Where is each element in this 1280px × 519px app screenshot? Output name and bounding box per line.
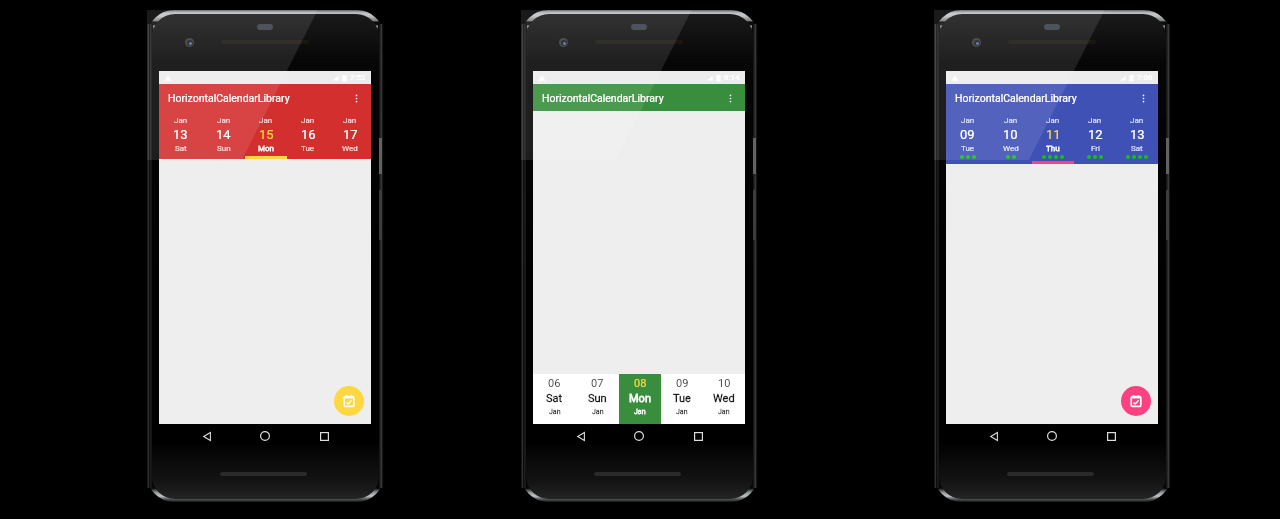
button[interactable]: Recents	[687, 425, 709, 447]
button[interactable]: Recents	[1100, 425, 1122, 447]
staticText: Jan	[961, 116, 975, 125]
button[interactable]: 10	[703, 374, 745, 424]
staticText: 06	[548, 377, 561, 390]
staticText: Thu	[1046, 144, 1060, 153]
staticText: Sat	[546, 392, 563, 405]
button[interactable]: Home	[254, 425, 276, 447]
button[interactable]: Jan	[1116, 111, 1158, 164]
staticText: 7:06	[1137, 73, 1153, 82]
button[interactable]: Home	[628, 425, 650, 447]
button[interactable]: Back	[570, 425, 592, 447]
staticText: Jan	[174, 116, 188, 125]
staticText: Tue	[301, 144, 315, 153]
staticText: Sat	[175, 144, 187, 153]
staticText: HorizontalCalendarLibrary	[542, 92, 664, 104]
staticText: 09	[676, 377, 689, 390]
staticText: Jan	[259, 116, 273, 125]
staticText: 14	[216, 127, 231, 142]
staticText: 8:14	[724, 73, 740, 82]
button[interactable]: Back	[196, 425, 218, 447]
staticText: HorizontalCalendarLibrary	[168, 92, 290, 104]
button[interactable]: 06	[533, 374, 576, 424]
staticText: Jan	[301, 116, 315, 125]
staticText: Jan	[634, 408, 646, 416]
staticText: 7:52	[350, 73, 366, 82]
staticText: Wed	[342, 144, 358, 153]
button[interactable]: Jan	[989, 111, 1032, 164]
staticText: Jan	[549, 408, 561, 416]
staticText: Jan	[1046, 116, 1060, 125]
staticText: 09	[960, 127, 975, 142]
button[interactable]: Jan	[1032, 111, 1074, 164]
staticText: 10	[1003, 127, 1018, 142]
button[interactable]: Jan	[946, 111, 989, 164]
staticText: Jan	[343, 116, 357, 125]
staticText: HorizontalCalendarLibrary	[955, 92, 1077, 104]
staticText: 17	[343, 127, 358, 142]
staticText: Mon	[629, 392, 651, 405]
button[interactable]: Back	[983, 425, 1005, 447]
staticText: 12	[1088, 127, 1103, 142]
button[interactable]: Jan	[1074, 111, 1116, 164]
staticText: Fri	[1091, 144, 1100, 153]
button[interactable]: More options	[345, 87, 367, 109]
staticText: Jan	[1088, 116, 1102, 125]
staticText: 10	[718, 377, 731, 390]
staticText: Tue	[961, 144, 975, 153]
button[interactable]: Jan	[202, 111, 245, 159]
button[interactable]: Jan	[329, 111, 371, 159]
staticText: Sun	[217, 144, 231, 153]
staticText: Sat	[1131, 144, 1143, 153]
button[interactable]: 08	[619, 374, 661, 424]
button[interactable]: Jan	[245, 111, 287, 159]
button[interactable]: 09	[661, 374, 703, 424]
staticText: Wed	[1003, 144, 1019, 153]
button[interactable]: More options	[719, 87, 741, 109]
button[interactable]: Jan	[159, 111, 202, 159]
staticText: 15	[259, 127, 274, 142]
staticText: Mon	[258, 144, 274, 153]
button[interactable]: More options	[1132, 87, 1154, 109]
staticText: 08	[634, 377, 647, 390]
staticText: 07	[591, 377, 604, 390]
staticText: Jan	[1130, 116, 1144, 125]
staticText: 16	[301, 127, 316, 142]
staticText: Jan	[718, 408, 730, 416]
staticText: Wed	[713, 392, 735, 405]
staticText: Tue	[673, 392, 691, 405]
staticText: 13	[1130, 127, 1145, 142]
staticText: 13	[173, 127, 188, 142]
button[interactable]: Add event	[334, 386, 364, 416]
staticText: Jan	[676, 408, 688, 416]
button[interactable]: Home	[1041, 425, 1063, 447]
button[interactable]: Recents	[313, 425, 335, 447]
staticText: Jan	[217, 116, 231, 125]
staticText: Jan	[592, 408, 604, 416]
button[interactable]: Add event	[1121, 386, 1151, 416]
staticText: Sun	[588, 392, 607, 405]
button[interactable]: Jan	[287, 111, 329, 159]
staticText: Jan	[1004, 116, 1018, 125]
button[interactable]: 07	[576, 374, 619, 424]
staticText: 11	[1046, 127, 1061, 142]
